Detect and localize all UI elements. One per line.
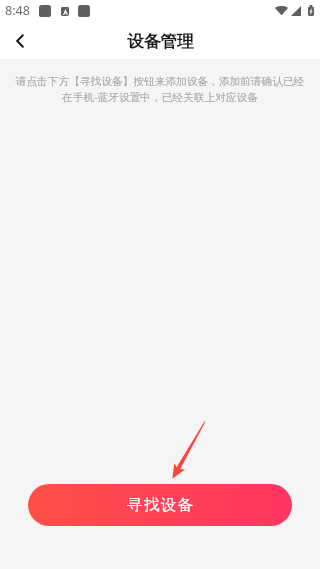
- staticText: 请点击下方【寻找设备】按钮来添加设备，添加前请确认已经 在手机-蓝牙设置中，已经…: [10, 75, 310, 104]
- staticText: 8:48: [5, 2, 30, 19]
- staticText: 寻找设备: [127, 495, 195, 515]
- staticText: 设备管理: [127, 31, 194, 52]
- button[interactable]: 寻找设备: [28, 484, 292, 526]
- button[interactable]: Back: [0, 21, 40, 59]
